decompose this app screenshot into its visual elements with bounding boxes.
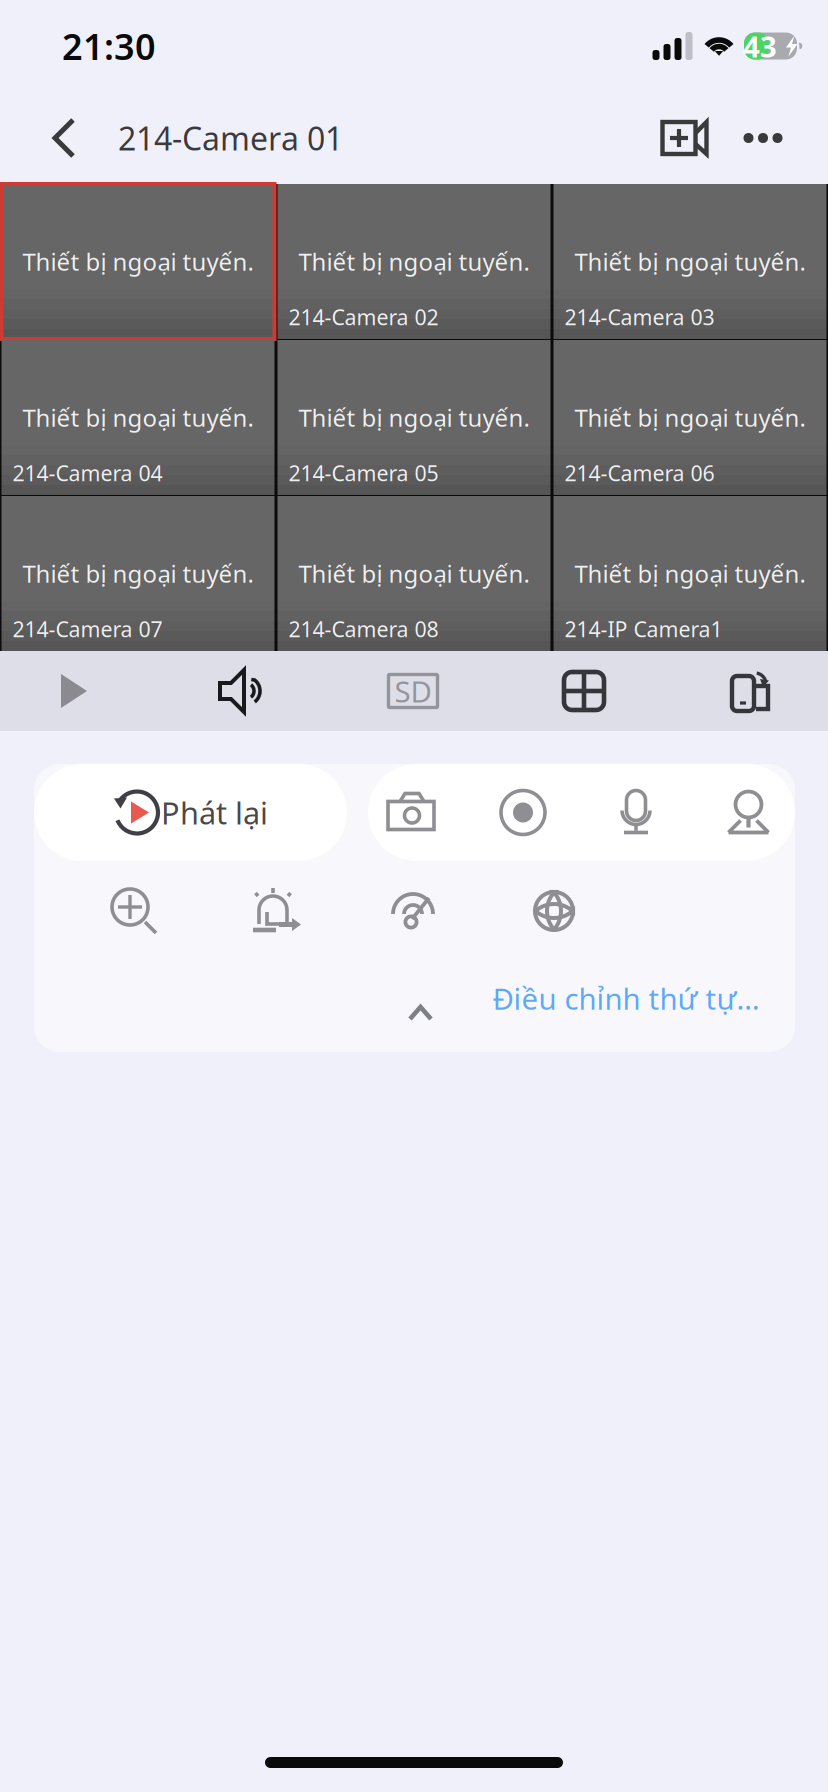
staticText: Thiết bị ngoại tuyến. (574, 402, 805, 433)
staticText: 214-Camera 05 (288, 459, 438, 487)
button[interactable]: Thiết bị ngoại tuyến. (277, 340, 550, 495)
staticText: Thiết bị ngoại tuyến. (22, 246, 253, 277)
staticText: SD (394, 671, 431, 710)
staticText: 214-Camera 03 (564, 303, 714, 331)
staticText: 214-IP Camera1 (564, 615, 722, 643)
button[interactable]: More (721, 110, 805, 166)
button[interactable]: Back (46, 110, 102, 166)
button[interactable]: Phát lại (34, 764, 347, 861)
button[interactable]: Digital zoom (64, 861, 204, 961)
button[interactable]: Expand (371, 961, 470, 1031)
staticText: 43 (743, 26, 777, 65)
staticText: 21:30 (62, 22, 156, 70)
button[interactable]: Play (0, 651, 148, 731)
button[interactable]: Thiết bị ngoại tuyến. (553, 340, 826, 495)
button[interactable]: Record (456, 764, 590, 861)
button[interactable]: Layout (490, 651, 678, 731)
button[interactable]: Sound (148, 651, 336, 731)
staticText: 214-Camera 06 (564, 459, 714, 487)
button[interactable]: PTZ (682, 764, 815, 861)
staticText: Thiết bị ngoại tuyến. (574, 558, 805, 589)
button[interactable]: Thiết bị ngoại tuyến. (553, 184, 826, 339)
staticText: Thiết bị ngoại tuyến. (298, 558, 529, 589)
staticText: 214-Camera 02 (288, 303, 438, 331)
button[interactable]: Thiết bị ngoại tuyến. (1, 340, 274, 495)
button[interactable]: Snapshot (368, 764, 456, 861)
button[interactable]: Talk (590, 764, 682, 861)
button[interactable]: Stream (344, 861, 484, 961)
staticText: Thiết bị ngoại tuyến. (22, 558, 253, 589)
button[interactable]: Add camera (647, 110, 721, 166)
button[interactable]: Thiết bị ngoại tuyến. (277, 496, 550, 651)
button[interactable]: Thiết bị ngoại tuyến. (1, 496, 274, 651)
staticText: 214-Camera 01 (118, 117, 343, 159)
staticText: Thiết bị ngoại tuyến. (22, 402, 253, 433)
staticText: Thiết bị ngoại tuyến. (574, 246, 805, 277)
staticText: Thiết bị ngoại tuyến. (298, 402, 529, 433)
staticText: Điều chỉnh thứ tự… (492, 979, 759, 1018)
button[interactable]: Điều chỉnh thứ tự… (492, 961, 760, 1031)
staticText: Phát lại (161, 792, 268, 833)
button[interactable]: Fisheye (484, 861, 624, 961)
button[interactable]: Quality SD (336, 651, 490, 731)
staticText: 214-Camera 04 (12, 459, 162, 487)
staticText: Thiết bị ngoại tuyến. (298, 246, 529, 277)
button[interactable]: Thiết bị ngoại tuyến. (277, 184, 550, 339)
staticText: 214-Camera 07 (12, 615, 162, 643)
button[interactable]: Thiết bị ngoại tuyến. (553, 496, 826, 651)
button[interactable]: Thiết bị ngoại tuyến. (1, 184, 274, 339)
staticText: 214-Camera 08 (288, 615, 438, 643)
button[interactable]: Rotate (678, 651, 828, 731)
button[interactable]: Alarm output (204, 861, 344, 961)
